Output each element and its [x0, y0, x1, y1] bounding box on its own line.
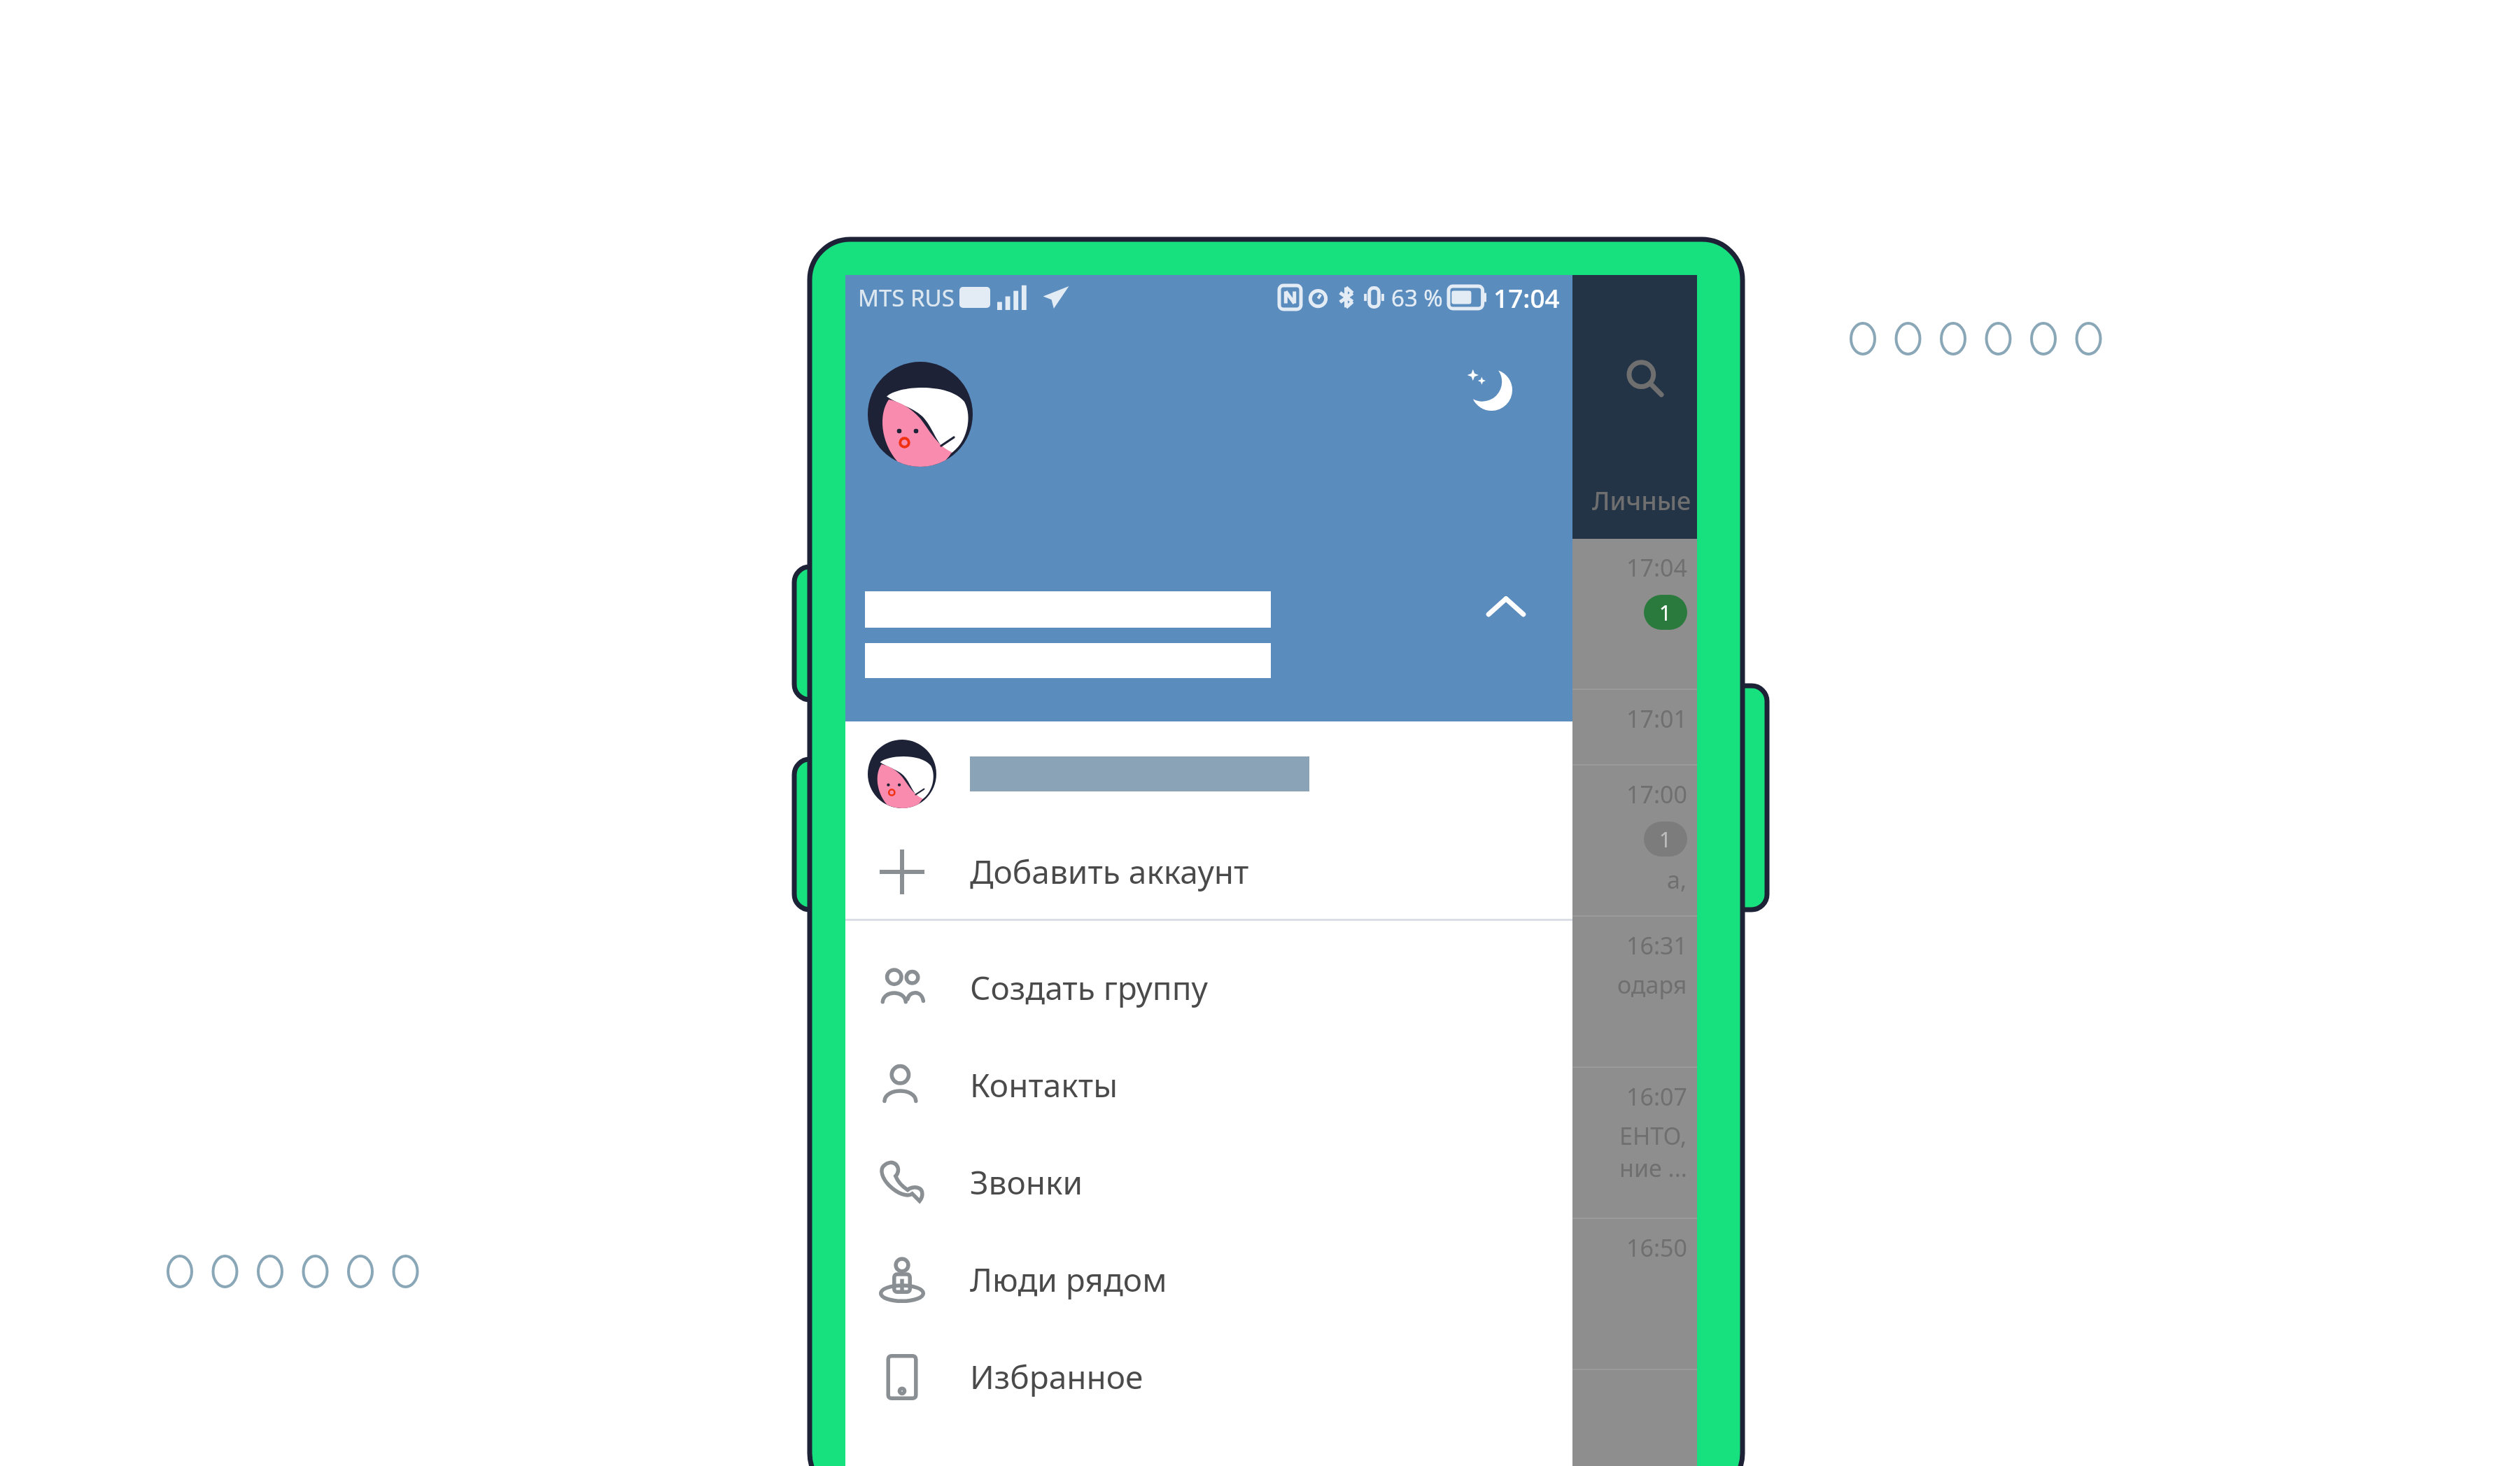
staticText: Контакты — [970, 1063, 1118, 1107]
button[interactable]: 16:07 — [845, 1068, 1697, 1219]
button[interactable]: Expand accounts — [1476, 577, 1536, 637]
staticText: а, — [1667, 864, 1687, 896]
staticText: 17:01 — [1626, 703, 1687, 735]
staticText: 16:50 — [1626, 1232, 1687, 1264]
staticText: 1 — [1659, 825, 1672, 854]
staticText: 17:04 — [1493, 280, 1560, 315]
button[interactable]: Добавить аккаунт — [845, 824, 1572, 919]
staticText: ЕНТО, — [1619, 1120, 1687, 1152]
staticText: Люди рядом — [970, 1257, 1167, 1302]
button[interactable]: Личные — [1592, 484, 1691, 518]
button[interactable]: Люди рядом — [845, 1231, 1572, 1328]
staticText: Избранное — [970, 1355, 1143, 1399]
staticText: Звонки — [970, 1160, 1083, 1204]
staticText: Добавить аккаунт — [970, 850, 1249, 894]
button[interactable]: Night mode — [1455, 353, 1522, 421]
button[interactable]: Звонки — [845, 1134, 1572, 1231]
button[interactable]: 17:01 — [845, 690, 1697, 766]
button[interactable]: 17:00 — [845, 766, 1697, 917]
button[interactable]: 16:50 — [845, 1219, 1697, 1370]
button[interactable]: Избранное — [845, 1328, 1572, 1425]
button[interactable]: 16:31 — [845, 917, 1697, 1068]
staticText: Личные — [1592, 484, 1691, 518]
staticText: 17:00 — [1626, 778, 1687, 810]
staticText: ние ... — [1619, 1152, 1687, 1184]
staticText: одаря — [1617, 968, 1687, 1001]
button[interactable] — [845, 723, 1572, 824]
button[interactable]: 17:04 — [845, 539, 1697, 690]
staticText: 1 — [1659, 598, 1672, 627]
staticText: Создать группу — [970, 966, 1208, 1010]
button[interactable]: Создать группу — [845, 939, 1572, 1036]
staticText: 16:31 — [1626, 929, 1687, 961]
button[interactable]: Контакты — [845, 1036, 1572, 1134]
staticText: 16:07 — [1626, 1080, 1687, 1113]
staticText: MTS RUS — [858, 282, 955, 313]
staticText: 63 % — [1391, 282, 1443, 313]
staticText: 17:04 — [1626, 551, 1687, 584]
button[interactable]: Search — [1614, 348, 1675, 409]
